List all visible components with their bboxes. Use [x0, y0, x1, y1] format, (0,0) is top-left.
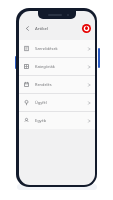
staticText: Ügyfél [35, 100, 87, 105]
button[interactable]: Ügyfél [19, 94, 95, 111]
staticText: Kategóriák [35, 64, 87, 69]
staticText: Rendelés [35, 82, 87, 87]
button[interactable]: Rendelés [19, 76, 95, 93]
button[interactable]: Szerződések [19, 40, 95, 57]
button[interactable]: Back [22, 23, 33, 34]
button[interactable]: Egyéb [19, 112, 95, 129]
staticText: Artikel [35, 26, 81, 32]
button[interactable]: Kategóriák [19, 58, 95, 75]
button[interactable]: Logo [81, 23, 92, 34]
staticText: Szerződések [35, 46, 87, 51]
staticText: Egyéb [35, 118, 87, 123]
